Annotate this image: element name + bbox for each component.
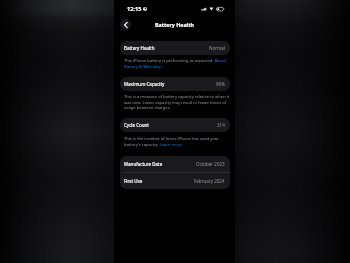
staticText: Cycle Count bbox=[124, 122, 149, 128]
staticText: 12:15 bbox=[127, 5, 142, 13]
staticText: Battery Health bbox=[155, 21, 194, 28]
staticText: October 2023 bbox=[196, 161, 225, 167]
staticText: February 2024 bbox=[194, 178, 225, 184]
button[interactable]: Battery Health bbox=[120, 41, 230, 55]
button[interactable]: Cycle Count bbox=[120, 118, 230, 132]
button[interactable]: Manufacture Date bbox=[120, 156, 230, 172]
staticText: 96% bbox=[216, 81, 225, 87]
staticText: Normal bbox=[209, 45, 225, 51]
button[interactable]: Maximum Capacity bbox=[120, 77, 230, 91]
staticText: Maximum Capacity bbox=[124, 81, 165, 87]
button[interactable]: First Use bbox=[120, 173, 230, 189]
button[interactable]: Back bbox=[120, 19, 131, 30]
staticText: This is a measure of battery capacity re… bbox=[124, 94, 231, 110]
staticText: 314 bbox=[217, 122, 225, 128]
staticText: This iPhone battery is performing as exp… bbox=[124, 58, 231, 69]
staticText: This is the number of times iPhone has u… bbox=[124, 136, 231, 147]
staticText: Battery Health bbox=[124, 45, 155, 51]
staticText: Manufacture Date bbox=[124, 161, 163, 167]
staticText: First Use bbox=[124, 178, 143, 184]
